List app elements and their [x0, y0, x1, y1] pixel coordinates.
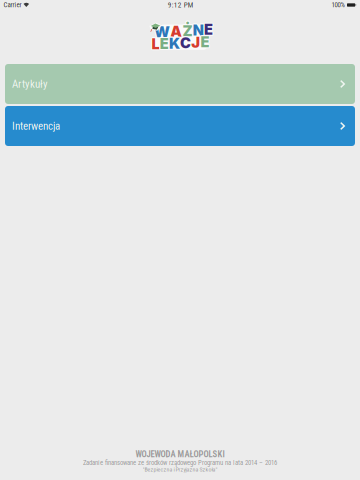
- staticText: J: [191, 33, 200, 51]
- staticText: Ż: [182, 22, 192, 40]
- staticText: E: [204, 20, 213, 37]
- staticText: K: [169, 34, 180, 52]
- staticText: A: [169, 22, 181, 39]
- staticText: L: [152, 35, 160, 53]
- staticText: E: [160, 35, 169, 53]
- staticText: K: [168, 34, 179, 52]
- staticText: 100%: [332, 1, 345, 9]
- staticText: Zadanie finansowane ze środków rządowego…: [83, 459, 277, 467]
- staticText: E: [203, 20, 212, 37]
- staticText: E: [159, 35, 168, 53]
- staticText: J: [190, 34, 199, 52]
- staticText: Carrier: [3, 1, 21, 9]
- staticText: W: [154, 24, 170, 42]
- staticText: E: [205, 21, 214, 38]
- staticText: E: [201, 33, 210, 51]
- staticText: E: [200, 33, 209, 51]
- staticText: W: [153, 24, 169, 42]
- staticText: K: [170, 34, 181, 51]
- staticText: L: [151, 35, 159, 53]
- staticText: E: [200, 32, 209, 50]
- staticText: Ż: [182, 23, 192, 40]
- staticText: L: [151, 36, 159, 53]
- staticText: A: [169, 23, 181, 41]
- staticText: L: [152, 36, 160, 53]
- staticText: C: [179, 35, 190, 52]
- staticText: N: [192, 21, 203, 39]
- staticText: 9:12 PM: [168, 1, 193, 9]
- staticText: Ż: [183, 21, 193, 39]
- staticText: C: [180, 33, 191, 51]
- staticText: E: [203, 21, 212, 39]
- staticText: Interwencja: [12, 120, 60, 132]
- staticText: J: [192, 34, 201, 52]
- staticText: Ż: [182, 23, 192, 41]
- staticText: Ż: [183, 22, 193, 40]
- staticText: A: [171, 23, 183, 41]
- button[interactable]: Artykuły: [5, 64, 355, 104]
- staticText: L: [151, 34, 159, 52]
- staticText: J: [191, 34, 200, 52]
- staticText: WOJEWODA MAŁOPOLSKI: [135, 449, 224, 459]
- staticText: A: [170, 22, 182, 40]
- staticText: J: [190, 33, 199, 50]
- staticText: C: [181, 34, 192, 52]
- staticText: E: [160, 36, 169, 53]
- staticText: N: [192, 22, 203, 40]
- staticText: J: [192, 33, 201, 50]
- staticText: C: [179, 34, 190, 52]
- staticText: K: [169, 35, 180, 53]
- staticText: K: [170, 35, 181, 53]
- staticText: W: [155, 24, 171, 42]
- staticText: Ż: [181, 22, 191, 40]
- staticText: E: [161, 35, 170, 52]
- staticText: "Bezpieczna i Przyjazna Szkoła": [142, 466, 217, 473]
- staticText: E: [203, 21, 212, 38]
- staticText: Artykuły: [12, 78, 48, 90]
- staticText: L: [151, 36, 159, 54]
- staticText: N: [193, 20, 204, 38]
- staticText: Ż: [182, 21, 192, 39]
- staticText: C: [179, 33, 190, 51]
- staticText: K: [170, 34, 181, 52]
- staticText: E: [199, 33, 208, 51]
- staticText: N: [193, 22, 204, 40]
- staticText: E: [160, 34, 169, 52]
- staticText: N: [193, 22, 204, 40]
- staticText: W: [154, 22, 170, 40]
- staticText: Ż: [182, 21, 192, 39]
- staticText: W: [153, 23, 169, 41]
- staticText: E: [200, 34, 209, 52]
- staticText: Ż: [183, 23, 193, 40]
- staticText: E: [205, 21, 214, 39]
- staticText: E: [160, 34, 169, 51]
- staticText: J: [191, 32, 200, 50]
- staticText: E: [200, 34, 209, 51]
- staticText: W: [154, 23, 170, 41]
- staticText: E: [160, 35, 169, 52]
- staticText: L: [150, 35, 158, 53]
- staticText: W: [155, 22, 171, 40]
- staticText: E: [159, 35, 168, 52]
- staticText: N: [193, 20, 204, 38]
- staticText: A: [171, 22, 183, 40]
- staticText: E: [204, 21, 213, 38]
- staticText: C: [180, 34, 191, 52]
- staticText: L: [151, 34, 159, 52]
- staticText: N: [194, 21, 205, 39]
- staticText: N: [192, 20, 203, 38]
- staticText: K: [168, 34, 179, 51]
- button[interactable]: Interwencja: [5, 106, 355, 146]
- staticText: W: [155, 23, 171, 41]
- staticText: N: [193, 21, 204, 39]
- staticText: A: [171, 22, 183, 39]
- staticText: E: [159, 34, 168, 52]
- staticText: E: [204, 22, 213, 39]
- staticText: E: [201, 32, 210, 50]
- staticText: J: [192, 33, 201, 51]
- staticText: K: [168, 35, 179, 53]
- staticText: E: [205, 20, 214, 37]
- staticText: A: [169, 22, 181, 40]
- staticText: K: [169, 33, 180, 51]
- staticText: C: [181, 33, 192, 51]
